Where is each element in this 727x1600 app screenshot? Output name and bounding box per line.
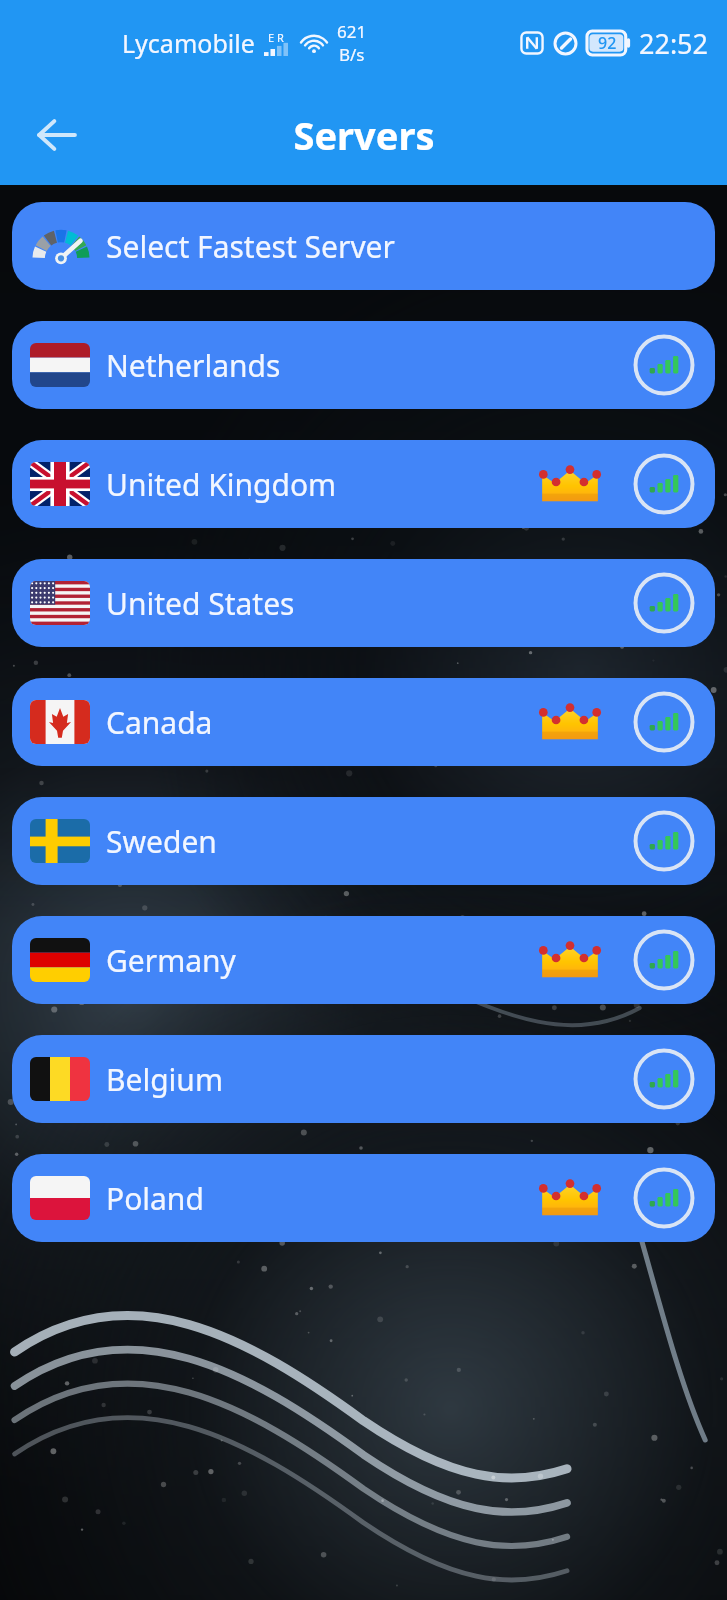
staticText: Servers	[293, 109, 435, 161]
staticText: Belgium	[106, 1059, 223, 1100]
button[interactable]: Netherlands	[12, 321, 715, 409]
staticText: E R	[268, 30, 284, 45]
button[interactable]: Sweden	[12, 797, 715, 885]
button[interactable]: United Kingdom	[12, 440, 715, 528]
staticText: Netherlands	[106, 345, 281, 386]
button[interactable]: Canada	[12, 678, 715, 766]
button[interactable]: Back	[20, 99, 92, 171]
staticText: United States	[106, 583, 295, 624]
button[interactable]: Poland	[12, 1154, 715, 1242]
staticText: Select Fastest Server	[106, 226, 395, 267]
staticText: 92	[598, 32, 617, 54]
staticText: Canada	[106, 702, 213, 743]
staticText: B/s	[339, 43, 365, 66]
button[interactable]: Belgium	[12, 1035, 715, 1123]
staticText: 22:52	[639, 25, 709, 62]
staticText: Sweden	[106, 821, 217, 862]
staticText: Lycamobile	[122, 26, 255, 60]
staticText: Poland	[106, 1178, 204, 1219]
button[interactable]: Germany	[12, 916, 715, 1004]
staticText: 621	[337, 20, 367, 43]
button[interactable]: Select Fastest Server	[12, 202, 715, 290]
staticText: Germany	[106, 940, 236, 981]
staticText: United Kingdom	[106, 464, 337, 505]
button[interactable]: United States	[12, 559, 715, 647]
